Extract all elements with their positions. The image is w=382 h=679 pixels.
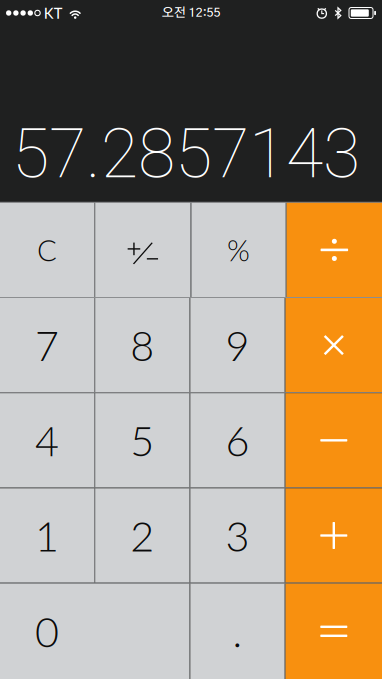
button[interactable]: 6	[190, 393, 285, 487]
button[interactable]: 1	[0, 488, 94, 583]
button[interactable]: 3	[190, 488, 285, 583]
button[interactable]: Subtract	[286, 393, 382, 487]
button[interactable]: 9	[190, 298, 285, 392]
staticText: 0	[35, 606, 59, 656]
button[interactable]: 7	[0, 298, 94, 392]
staticText: 4	[35, 415, 59, 465]
button[interactable]: Divide	[287, 203, 382, 297]
staticText: 6	[225, 415, 249, 465]
button[interactable]: .	[190, 584, 285, 679]
button[interactable]: 4	[0, 393, 94, 487]
button[interactable]: Equals	[286, 584, 382, 679]
button[interactable]: 2	[95, 488, 189, 583]
staticText: 1	[35, 511, 59, 560]
staticText: C	[37, 232, 57, 267]
button[interactable]: 8	[95, 298, 189, 392]
staticText: 5	[130, 415, 154, 465]
button[interactable]: 0	[0, 584, 189, 679]
staticText: 57.2857143	[12, 114, 360, 194]
button[interactable]: Add	[286, 488, 382, 583]
staticText: 8	[130, 320, 154, 370]
staticText: .	[232, 606, 242, 656]
button[interactable]: Multiply	[286, 298, 382, 392]
button[interactable]: Plus minus	[95, 203, 190, 297]
button[interactable]: C	[0, 203, 94, 297]
staticText: %	[227, 232, 250, 267]
staticText: 7	[35, 320, 59, 370]
staticText: 9	[225, 320, 249, 370]
staticText: 오전 12:55	[161, 7, 220, 19]
button[interactable]: %	[191, 203, 286, 297]
staticText: 3	[225, 511, 249, 560]
staticText: 2	[130, 511, 154, 560]
staticText: KT	[44, 4, 63, 22]
button[interactable]: 5	[95, 393, 189, 487]
